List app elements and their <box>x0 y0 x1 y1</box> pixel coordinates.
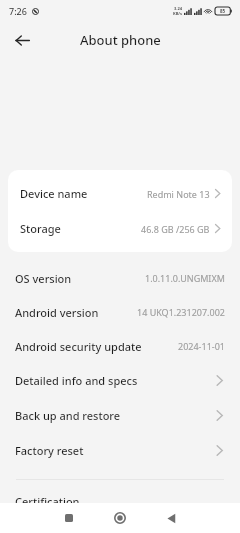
button[interactable]: Back <box>10 28 34 52</box>
staticText: KB/s <box>173 11 182 16</box>
button[interactable]: OS version <box>0 261 240 295</box>
button[interactable]: Storage <box>8 211 232 246</box>
staticText: 85 <box>220 8 226 14</box>
button[interactable]: Home <box>105 503 135 533</box>
staticText: 46.8 GB /256 GB <box>141 223 210 235</box>
staticText: About phone <box>80 31 161 49</box>
button[interactable]: Android security update <box>0 329 240 363</box>
button[interactable]: Back up and restore <box>0 398 240 433</box>
staticText: Redmi Note 13 <box>147 188 210 200</box>
button[interactable]: Factory reset <box>0 433 240 468</box>
staticText: Device name <box>20 186 88 201</box>
button[interactable]: Recents <box>54 503 84 533</box>
staticText: Certification <box>15 494 80 509</box>
button[interactable]: Certification <box>0 480 240 520</box>
button[interactable]: Device name <box>8 176 232 211</box>
staticText: Android version <box>15 305 99 320</box>
staticText: 1.0.11.0.UNGMIXM <box>145 272 225 284</box>
button[interactable]: Android version <box>0 295 240 329</box>
staticText: 2024-11-01 <box>178 340 225 352</box>
staticText: OS version <box>15 271 72 286</box>
staticText: 3.24 <box>174 6 182 11</box>
staticText: 14 UKQ1.231207.002 <box>137 306 225 318</box>
staticText: Back up and restore <box>15 408 121 423</box>
staticText: Android security update <box>15 339 142 354</box>
button[interactable]: Back <box>156 503 186 533</box>
button[interactable]: Detailed info and specs <box>0 363 240 398</box>
staticText: Storage <box>20 221 61 236</box>
staticText: Detailed info and specs <box>15 373 138 388</box>
staticText: Factory reset <box>15 443 84 458</box>
staticText: 7:26 <box>9 5 27 17</box>
